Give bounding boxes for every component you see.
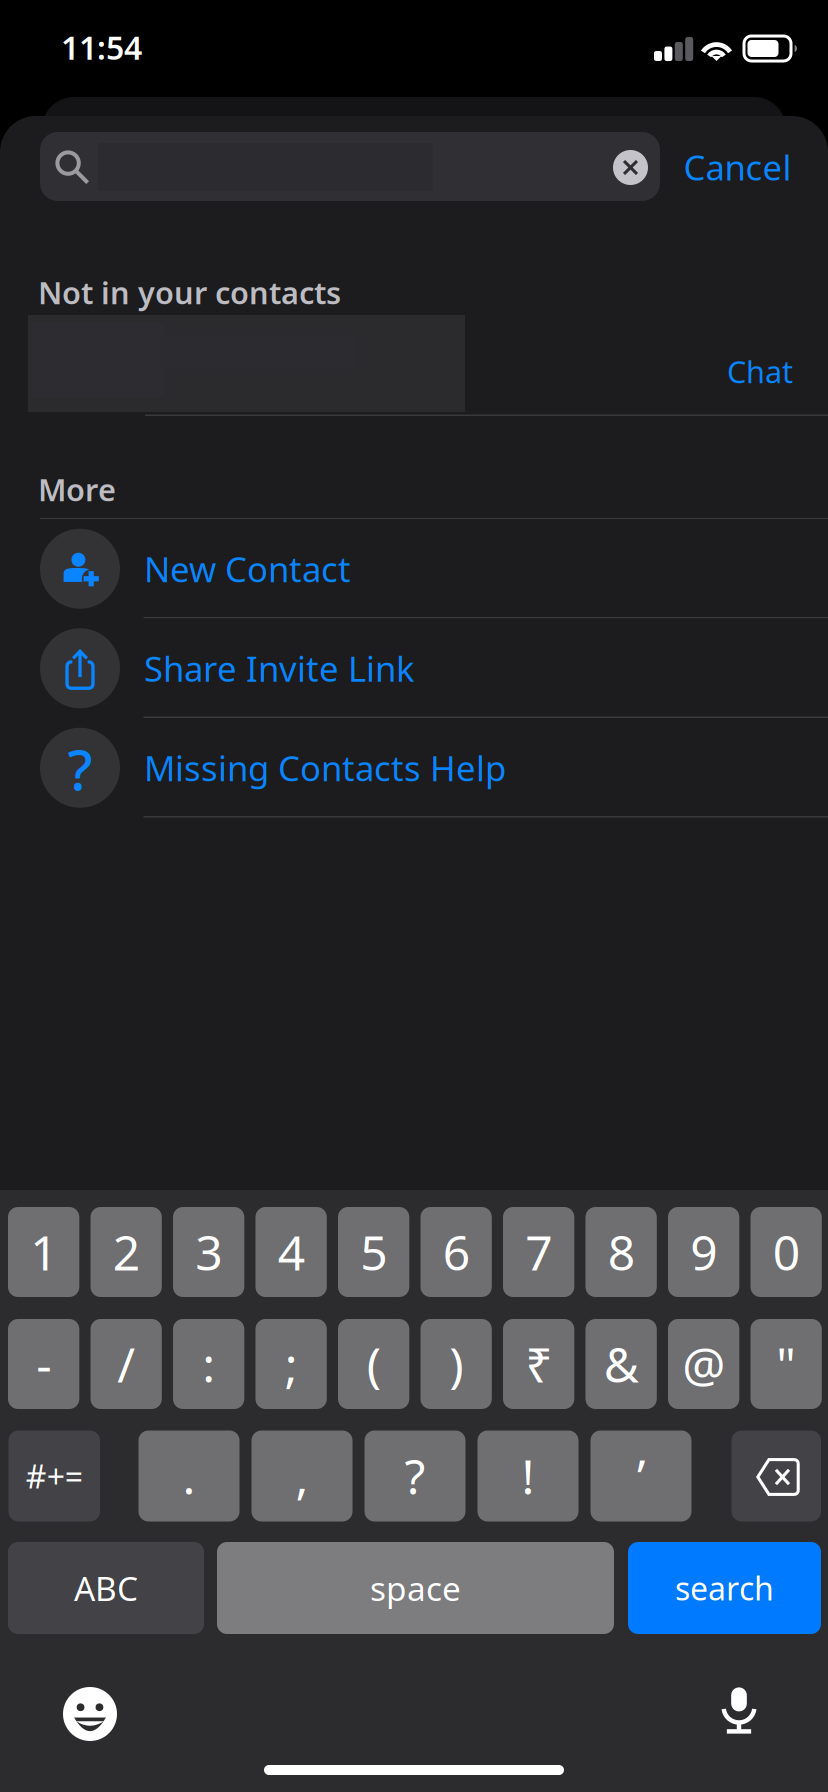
staticText: : [202,1332,215,1396]
button[interactable]: search [628,1542,821,1634]
staticText: " [776,1332,796,1396]
button[interactable]: 8 [585,1207,657,1297]
button[interactable]: - [8,1319,79,1409]
staticText: ₹ [525,1332,552,1396]
button[interactable]: Chat [0,315,828,415]
staticText: Missing Contacts Help [144,745,506,791]
button[interactable]: 3 [173,1207,244,1297]
staticText: 3 [195,1220,222,1284]
staticText: ? [67,732,92,806]
button[interactable]: #+= [8,1430,100,1521]
staticText: / [117,1332,135,1396]
button[interactable]: ; [255,1319,327,1409]
staticText: More [38,469,116,510]
staticText: Cancel [683,144,791,190]
button[interactable]: ₹ [503,1319,574,1409]
staticText: 7 [525,1220,552,1284]
staticText: 11:54 [61,26,142,68]
button[interactable]: 2 [90,1207,162,1297]
staticText: New Contact [144,546,351,592]
button[interactable]: Share Invite Link [0,618,828,718]
staticText: . [182,1444,195,1508]
staticText: ( [367,1332,381,1396]
button[interactable]: New Contact [0,519,828,618]
button[interactable]: @ [668,1319,739,1409]
staticText: ; [285,1332,298,1396]
staticText: ) [449,1332,463,1396]
staticText: #+= [26,1455,83,1497]
button[interactable]: 4 [255,1207,327,1297]
button[interactable]: ! [477,1430,578,1521]
button[interactable]: ? [0,718,828,817]
staticText: Share Invite Link [144,645,415,691]
button[interactable]: Dictate [712,1682,766,1736]
button[interactable]: space [217,1542,614,1634]
staticText: 6 [443,1220,470,1284]
staticText: 8 [608,1220,635,1284]
button[interactable]: ’ [590,1430,691,1521]
staticText: ’ [637,1444,645,1508]
button[interactable]: & [585,1319,657,1409]
staticText: & [604,1332,639,1396]
button[interactable]: , [251,1430,352,1521]
button[interactable]: 9 [668,1207,739,1297]
button[interactable]: " [750,1319,822,1409]
button[interactable]: . [138,1430,239,1521]
button[interactable]: / [90,1319,162,1409]
button[interactable]: ABC [8,1542,204,1634]
button[interactable]: 7 [503,1207,574,1297]
staticText: 9 [690,1220,717,1284]
staticText: Not in your contacts [38,272,341,313]
button[interactable]: ? [364,1430,465,1521]
staticText: - [36,1332,51,1396]
staticText: 0 [773,1220,800,1284]
button[interactable]: : [173,1319,244,1409]
staticText: ABC [74,1566,138,1610]
staticText: 5 [360,1220,387,1284]
button[interactable]: 1 [8,1207,79,1297]
button[interactable]: Emoji keyboard [63,1687,117,1741]
staticText: 2 [113,1220,140,1284]
button[interactable]: 6 [420,1207,492,1297]
staticText: Chat [727,351,793,392]
staticText: space [370,1566,461,1610]
staticText: ? [404,1444,425,1508]
staticText: search [675,1567,774,1609]
button[interactable]: Delete [731,1430,821,1521]
staticText: 1 [30,1220,57,1284]
staticText: @ [682,1332,725,1396]
staticText: , [295,1444,308,1508]
button[interactable]: ) [420,1319,492,1409]
staticText: ! [521,1444,534,1508]
button[interactable]: 5 [338,1207,409,1297]
button[interactable]: ( [338,1319,409,1409]
staticText: 4 [278,1220,305,1284]
button[interactable]: 0 [750,1207,822,1297]
button[interactable]: Clear search text [613,150,648,185]
button[interactable]: Cancel [672,140,803,194]
